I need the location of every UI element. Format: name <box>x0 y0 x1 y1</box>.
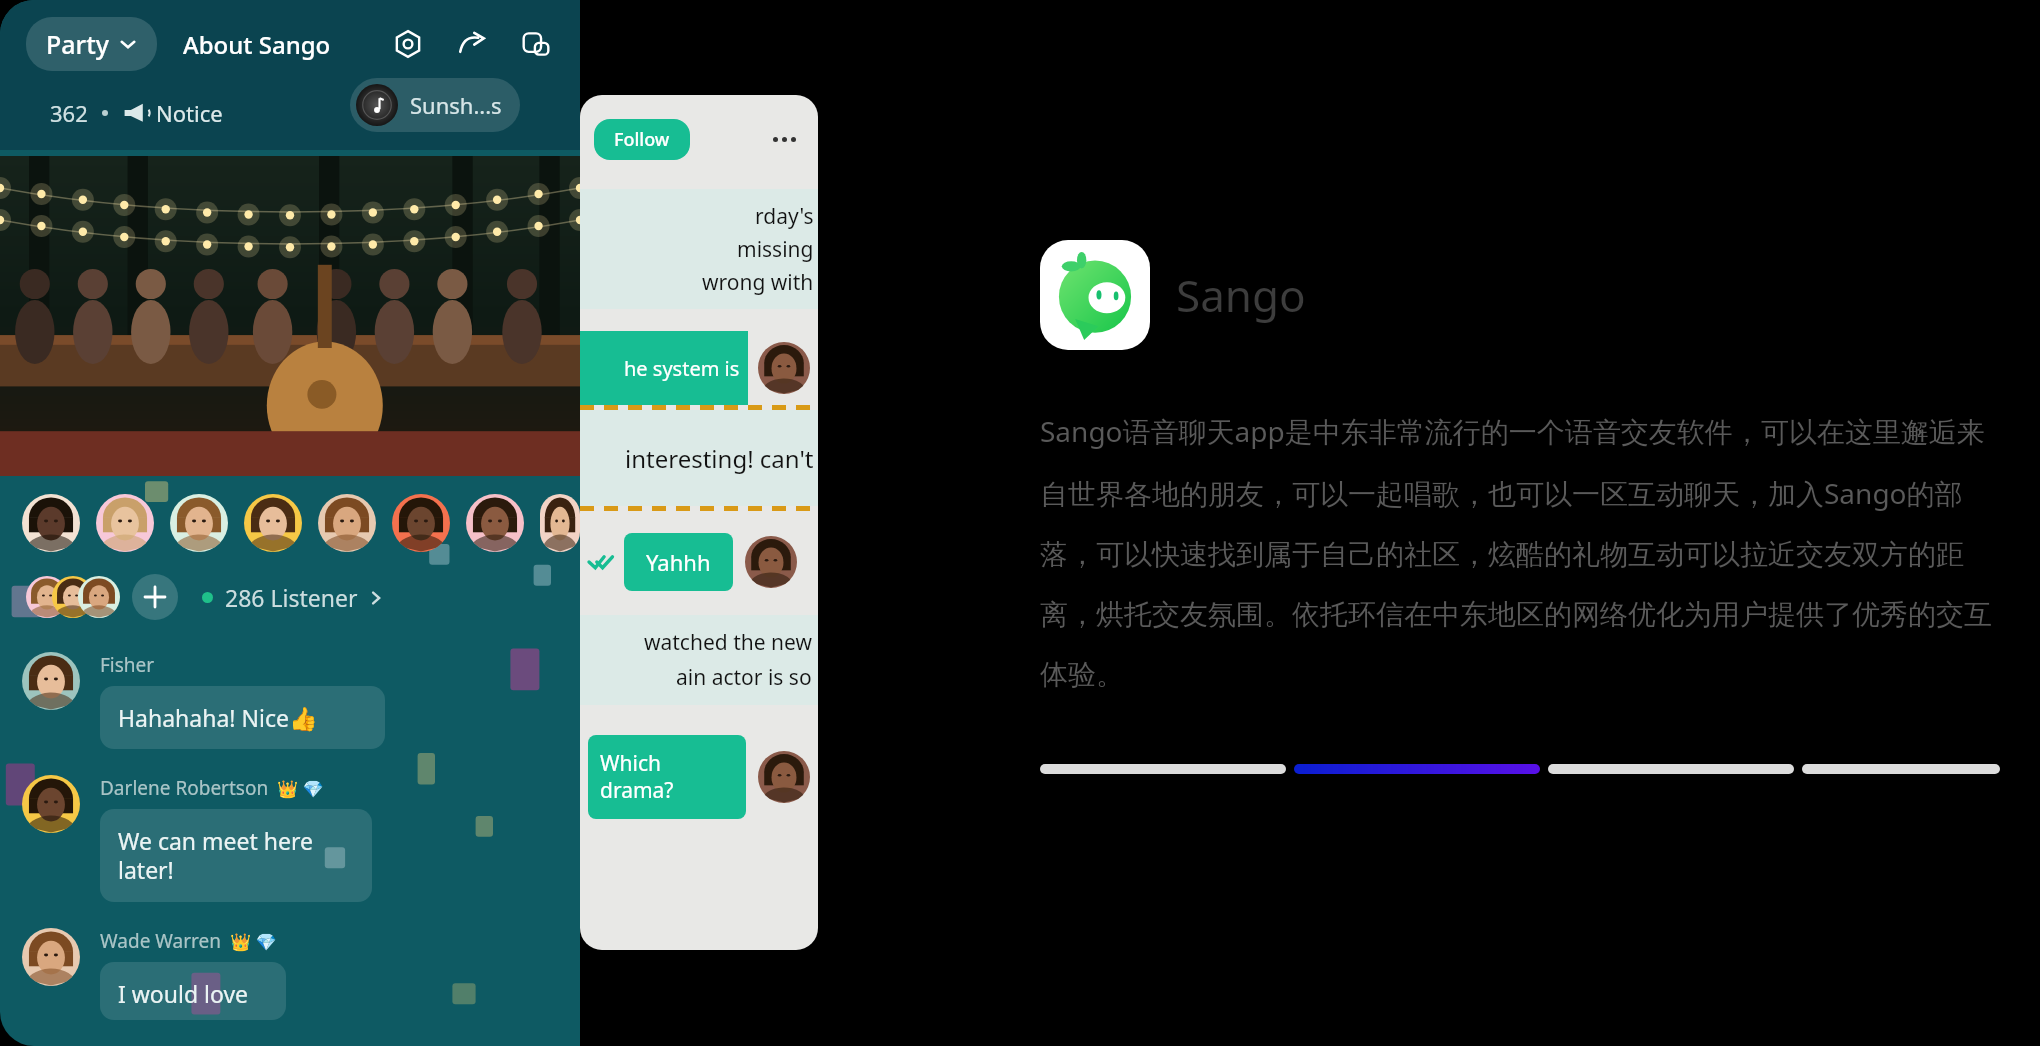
staticText: Notice <box>156 98 223 128</box>
button[interactable]: Seat 7 <box>466 494 524 552</box>
staticText: Fisher <box>100 652 155 678</box>
staticText: Which drama? <box>600 749 734 805</box>
staticText: 362 <box>50 98 88 128</box>
button[interactable]: Add <box>132 574 178 620</box>
staticText: Wade Warren <box>100 928 222 954</box>
staticText: 👑 💎 <box>230 930 277 953</box>
button[interactable]: Minimize <box>514 22 558 66</box>
staticText: Follow <box>614 127 670 152</box>
button[interactable]: Fisher <box>22 652 580 749</box>
staticText: missing <box>737 235 814 264</box>
button[interactable]: Seat 6 <box>392 494 450 552</box>
button[interactable]: Follow <box>594 119 690 160</box>
staticText: 286 Listener <box>225 582 358 613</box>
staticText: Sango <box>1176 265 1306 325</box>
staticText: Hahahaha! Nice👍 <box>118 702 318 733</box>
button[interactable]: Page 3 <box>1548 764 1794 774</box>
staticText: 👑 💎 <box>277 777 324 800</box>
staticText: Party <box>46 27 109 61</box>
button[interactable]: Party <box>26 17 157 71</box>
staticText: Sango语音聊天app是中东非常流行的一个语音交友软件，可以在这里邂逅来自世界… <box>1040 412 2000 692</box>
staticText: We can meet here later! <box>118 825 354 886</box>
button[interactable]: Seat 8 <box>540 494 580 552</box>
staticText: Yahhh <box>646 547 711 577</box>
staticText: Sunsh...s <box>410 90 502 120</box>
staticText: interesting! can't <box>625 442 814 475</box>
staticText: rday's <box>755 202 814 231</box>
button[interactable]: Page 1 <box>1040 764 1286 774</box>
button[interactable]: About Sango <box>183 28 331 61</box>
staticText: Darlene Robertson <box>100 775 269 801</box>
button[interactable]: Seat 3 <box>170 494 228 552</box>
staticText: he system is <box>624 355 740 382</box>
button[interactable]: More <box>764 119 804 159</box>
staticText: I would love to! <box>118 978 268 1004</box>
button[interactable]: Seat 2 <box>96 494 154 552</box>
button[interactable]: Seat 1 <box>22 494 80 552</box>
button[interactable]: Listeners <box>26 576 118 618</box>
staticText: watched the new <box>644 628 812 657</box>
button[interactable]: Page 4 <box>1802 764 2000 774</box>
button[interactable]: Share <box>450 22 494 66</box>
staticText: ain actor is so <box>676 663 812 692</box>
button[interactable]: Seat 5 <box>318 494 376 552</box>
button[interactable]: Wade Warren <box>22 928 580 1020</box>
staticText: wrong with <box>702 268 814 297</box>
button[interactable]: Darlene Robertson <box>22 775 580 902</box>
button[interactable]: Settings <box>386 22 430 66</box>
button[interactable]: Page 2 <box>1294 764 1540 774</box>
button[interactable]: 286 Listener <box>202 582 384 613</box>
button[interactable]: Seat 4 <box>244 494 302 552</box>
button[interactable]: Sunsh...s <box>350 78 520 132</box>
